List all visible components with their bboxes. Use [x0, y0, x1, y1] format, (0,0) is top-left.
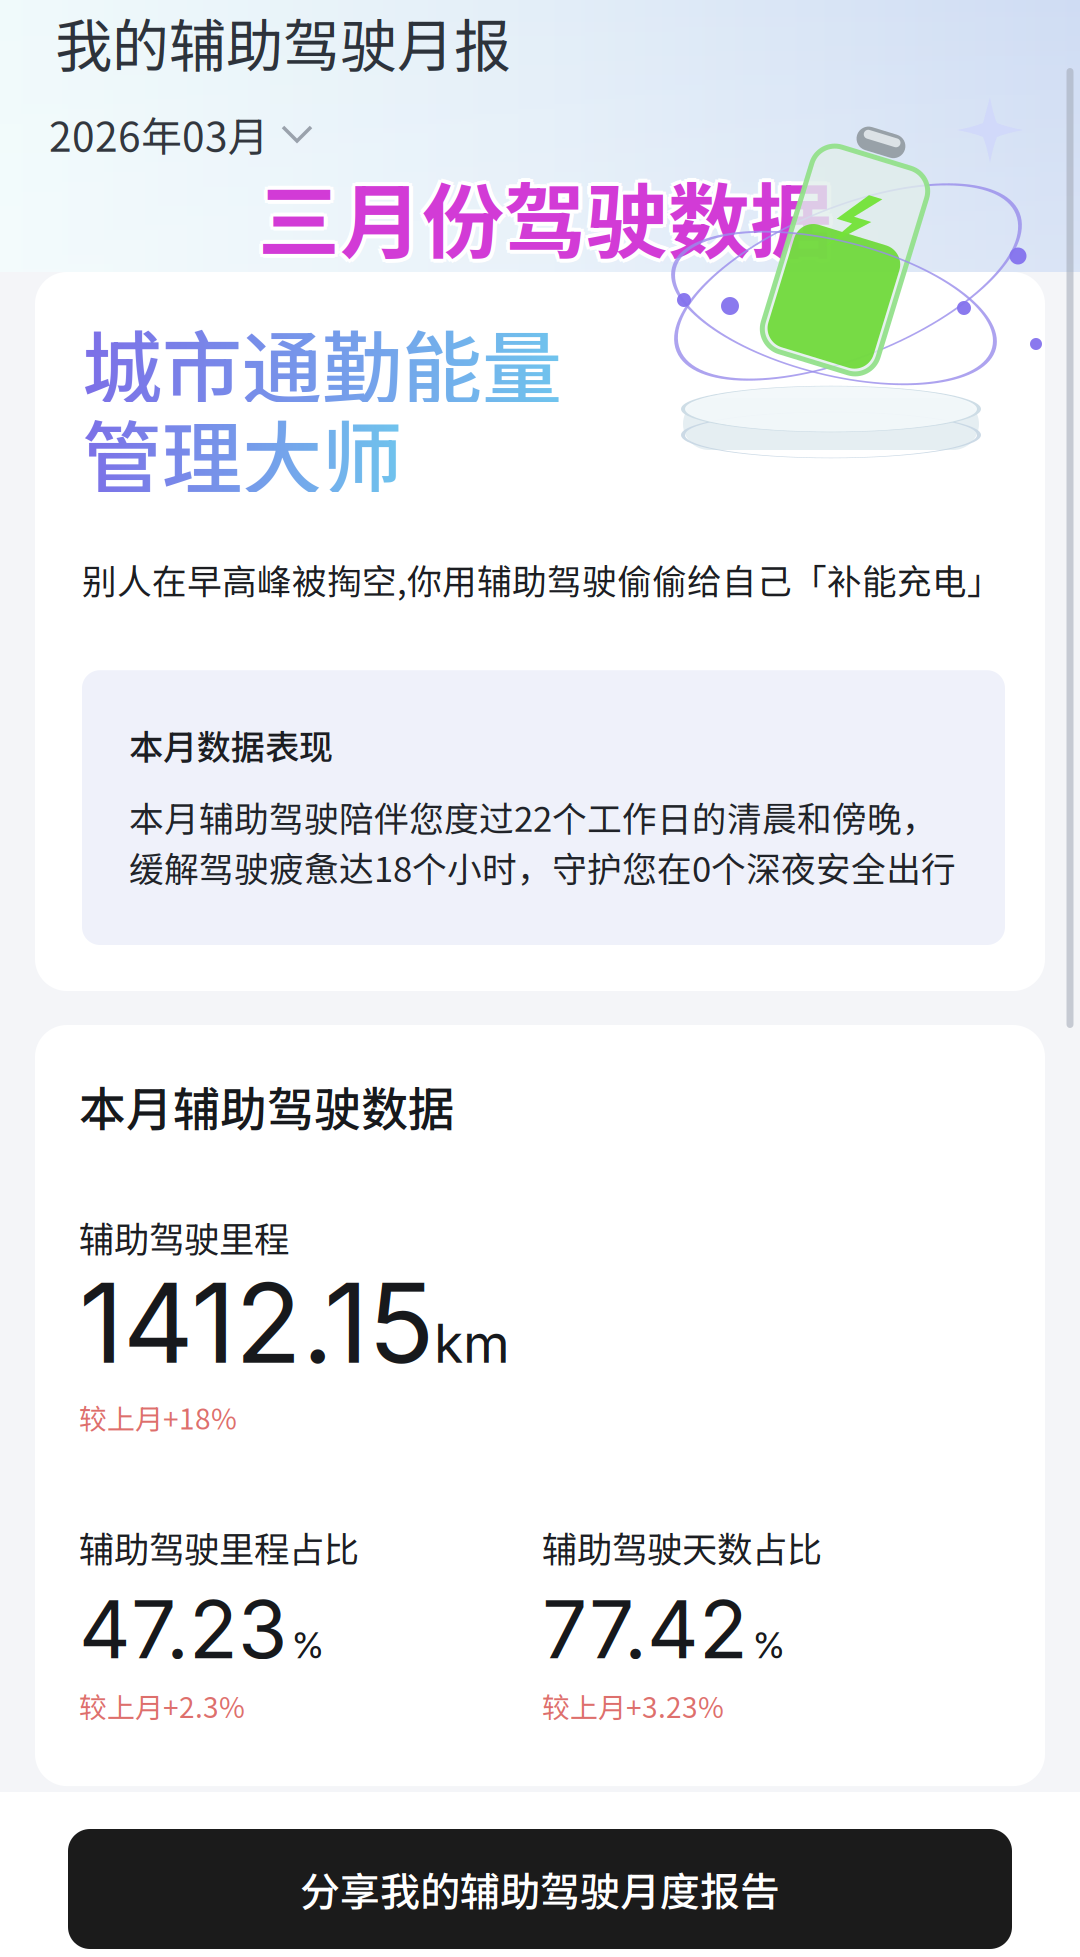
staticText: 1412.15 — [79, 1257, 434, 1389]
staticText: 三月份驾驶数据 — [258, 157, 832, 275]
staticText: 较上月+2.3% — [79, 1685, 245, 1726]
staticText: 辅助驾驶里程 — [79, 1212, 289, 1263]
staticText: 我的辅助驾驶月报 — [55, 1, 511, 83]
staticText: 本月辅助驾驶数据 — [79, 1072, 455, 1140]
staticText: 别人在早高峰被掏空,你用辅助驾驶偷偷给自己「补能充电」 — [82, 554, 1002, 604]
staticText: 本月数据表现 — [129, 720, 333, 770]
button[interactable]: 2026年03月 — [49, 105, 313, 163]
staticText: % — [753, 1623, 785, 1667]
staticText: 辅助驾驶天数占比 — [542, 1522, 822, 1573]
staticText: 三月份驾驶数据 — [255, 154, 829, 272]
staticText: 77.42 — [542, 1581, 748, 1678]
staticText: 辅助驾驶里程占比 — [79, 1522, 359, 1573]
staticText: 三月份驾驶数据 — [254, 157, 828, 275]
staticText: 2026年03月 — [49, 105, 269, 163]
staticText: 三月份驾驶数据 — [262, 157, 836, 275]
staticText: 分享我的辅助驾驶月度报告 — [300, 1860, 780, 1918]
staticText: 三月份驾驶数据 — [261, 160, 835, 278]
staticText: 本月辅助驾驶陪伴您度过22个工作日的清晨和傍晚，缓解驾驶疲惫达18个小时，守护您… — [129, 792, 956, 892]
staticText: km — [434, 1311, 510, 1375]
button[interactable]: 分享我的辅助驾驶月度报告 — [0, 1829, 1080, 1949]
staticText: 三月份驾驶数据 — [258, 161, 832, 279]
staticText: 较上月+18% — [79, 1397, 237, 1437]
staticText: % — [292, 1623, 324, 1667]
staticText: 三月份驾驶数据 — [261, 154, 835, 272]
staticText: 三月份驾驶数据 — [255, 160, 829, 278]
staticText: 较上月+3.23% — [542, 1685, 724, 1726]
staticText: 三月份驾驶数据 — [258, 153, 832, 271]
staticText: 47.23 — [79, 1581, 287, 1678]
